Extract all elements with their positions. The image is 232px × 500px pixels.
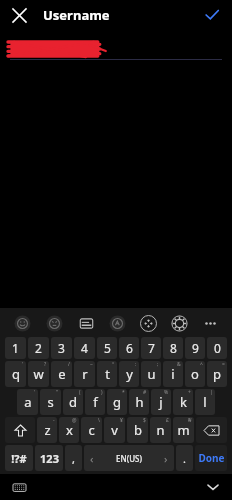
staticText: # (143, 389, 147, 396)
staticText: q (12, 365, 20, 383)
staticText: ^ (200, 361, 203, 368)
button[interactable]: , (65, 445, 82, 471)
button[interactable]: Emoji (6, 310, 38, 336)
staticText: c (88, 421, 95, 439)
button[interactable]: Clipboard (70, 310, 102, 336)
button[interactable]: 9 (185, 337, 205, 359)
staticText: ~ (90, 361, 93, 368)
button[interactable]: 6 (119, 337, 139, 359)
button[interactable]: a (17, 389, 38, 415)
staticText: r (82, 365, 88, 383)
staticText: 4 (81, 340, 88, 356)
button[interactable]: Shift (5, 417, 35, 443)
button[interactable]: g (107, 389, 127, 415)
staticText: $ (143, 417, 146, 424)
button[interactable]: Confirm (199, 2, 225, 28)
button[interactable]: !?# (5, 445, 33, 471)
button[interactable]: Hide keyboard (202, 476, 224, 498)
staticText: y (126, 365, 133, 383)
button[interactable]: k (173, 389, 193, 415)
button[interactable]: s (40, 389, 61, 415)
staticText: \ (98, 417, 100, 424)
button[interactable]: 5 (97, 337, 117, 359)
staticText: j (159, 393, 163, 411)
staticText: f (93, 393, 98, 411)
button[interactable]: More (195, 310, 226, 336)
staticText: ₩ (188, 417, 192, 424)
button[interactable]: . (176, 445, 193, 471)
button[interactable]: n (150, 417, 171, 443)
button[interactable]: Change keyboard (8, 476, 30, 498)
staticText: * (122, 389, 125, 396)
staticText: £ (166, 417, 169, 424)
staticText: z (44, 421, 51, 439)
staticText: n (156, 421, 165, 439)
staticText: ' (22, 361, 24, 368)
button[interactable]: o (185, 361, 205, 387)
button[interactable]: 7 (141, 337, 161, 359)
button[interactable]: ‹ (84, 445, 174, 471)
button[interactable]: Done (195, 445, 227, 471)
button[interactable]: c (81, 417, 102, 443)
button[interactable]: m (173, 417, 194, 443)
staticText: | (210, 389, 213, 396)
button[interactable]: f (85, 389, 105, 415)
button[interactable]: u (141, 361, 161, 387)
button[interactable]: y (119, 361, 139, 387)
staticText: e (58, 365, 66, 383)
button[interactable]: v (104, 417, 125, 443)
button[interactable]: 123 (35, 445, 63, 471)
staticText: 1 (12, 340, 19, 356)
button[interactable]: i (163, 361, 183, 387)
button[interactable]: d (63, 389, 83, 415)
button[interactable]: r (74, 361, 95, 387)
staticText: = (222, 361, 225, 368)
staticText: w (33, 365, 44, 383)
staticText: : (135, 361, 137, 368)
button[interactable]: b (127, 417, 148, 443)
button[interactable]: z (37, 417, 57, 443)
button[interactable]: j (151, 389, 171, 415)
staticText: ; (157, 361, 159, 368)
staticText: u (147, 365, 156, 383)
button[interactable]: w (28, 361, 49, 387)
staticText: 8 (170, 340, 177, 356)
button[interactable]: Move cursor (133, 310, 164, 336)
staticText: l (203, 393, 207, 411)
button[interactable]: t (97, 361, 117, 387)
button[interactable]: Translate (102, 310, 133, 336)
button[interactable]: 3 (51, 337, 72, 359)
staticText: 3 (58, 340, 65, 356)
staticText: " (56, 389, 59, 396)
button[interactable]: 4 (74, 337, 95, 359)
button[interactable]: h (129, 389, 149, 415)
staticText: Username (43, 6, 110, 24)
staticText: / (68, 361, 70, 368)
staticText: Done (198, 451, 225, 465)
staticText: 9 (192, 340, 199, 356)
button[interactable]: 8 (163, 337, 183, 359)
staticText: h (135, 393, 144, 411)
button[interactable]: e (51, 361, 72, 387)
staticText: 123 (40, 451, 59, 466)
button[interactable]: 0 (207, 337, 227, 359)
staticText: 6 (126, 340, 133, 356)
button[interactable]: 1 (5, 337, 26, 359)
staticText: % (164, 389, 169, 396)
button[interactable]: Close (6, 2, 32, 28)
button[interactable]: q (5, 361, 26, 387)
staticText: ( (79, 389, 81, 396)
staticText: m (177, 421, 190, 439)
staticText: 2 (35, 340, 42, 356)
staticText: b (134, 421, 142, 439)
button[interactable]: l (195, 389, 215, 415)
staticText: v (111, 421, 118, 439)
button[interactable]: x (59, 417, 79, 443)
button[interactable]: Stickers (38, 310, 70, 336)
staticText: , (72, 451, 75, 466)
button[interactable]: 2 (28, 337, 49, 359)
staticText: p (213, 365, 221, 383)
button[interactable]: Settings (164, 310, 195, 336)
button[interactable]: Backspace (196, 417, 227, 443)
button[interactable]: p (207, 361, 227, 387)
